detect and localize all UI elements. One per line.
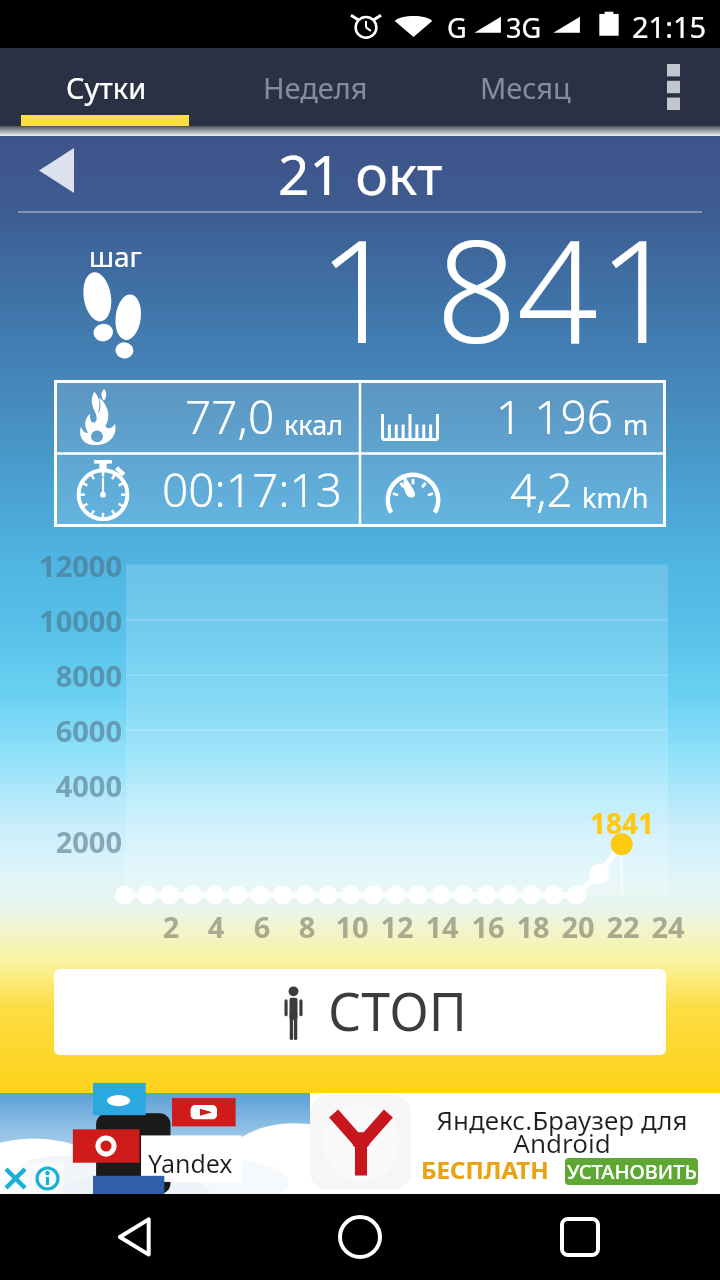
staticText: 1 841 (318, 191, 680, 384)
button[interactable]: More options (633, 48, 713, 126)
staticText: 6 (237, 907, 287, 946)
staticText: шаг (89, 237, 142, 275)
staticText: 18 (508, 907, 558, 946)
button[interactable]: 00:17:13 (54, 453, 360, 526)
staticText: 4000 (0, 766, 122, 805)
staticText: 4,2 (510, 458, 573, 521)
staticText: 20 (553, 907, 603, 946)
button[interactable]: Recent apps (520, 1194, 640, 1280)
staticText: 10 (327, 907, 377, 946)
staticText: 8 (282, 907, 332, 946)
staticText: 2 (146, 907, 196, 946)
button[interactable]: 1 196 (360, 380, 666, 453)
staticText: Месяц (480, 68, 571, 107)
staticText: СТОП (328, 975, 467, 1046)
staticText: 14 (417, 907, 467, 946)
staticText: ккал (284, 406, 343, 443)
button[interactable]: СТОП (54, 969, 666, 1055)
staticText: 00:17:13 (162, 458, 343, 521)
staticText: 8000 (0, 656, 122, 695)
staticText: 6000 (0, 711, 122, 750)
staticText: 10000 (0, 601, 122, 640)
staticText: Yandex (148, 1146, 233, 1180)
button[interactable]: Месяц (420, 48, 630, 126)
staticText: БЕСПЛАТНО (421, 1153, 561, 1219)
button[interactable]: 77,0 (54, 380, 360, 453)
staticText: 21:15 (632, 7, 707, 46)
staticText: G (447, 9, 467, 46)
staticText: 21 окт (278, 136, 443, 211)
staticText: m (623, 406, 649, 443)
button[interactable]: 4,2 (360, 453, 666, 526)
staticText: 12000 (0, 546, 122, 585)
staticText: Android (412, 1125, 712, 1160)
button[interactable]: Previous day (20, 140, 92, 200)
staticText: 3G (506, 9, 542, 46)
button[interactable]: УСТАНОВИТЬ (565, 1158, 698, 1185)
staticText: 1841 (582, 804, 662, 842)
button[interactable]: Close ad (0, 1163, 31, 1194)
staticText: 12 (372, 907, 422, 946)
staticText: 24 (643, 907, 693, 946)
staticText: 4 (191, 907, 241, 946)
button[interactable]: Неделя (210, 48, 420, 126)
staticText: 16 (463, 907, 513, 946)
staticText: Неделя (263, 68, 368, 107)
staticText: УСТАНОВИТЬ (567, 1158, 697, 1185)
staticText: 2000 (0, 822, 122, 861)
staticText: 1 196 (496, 385, 614, 448)
button[interactable]: Back (75, 1194, 195, 1280)
staticText: km/h (582, 479, 649, 516)
button[interactable]: Сутки (2, 48, 210, 126)
staticText: Сутки (66, 68, 147, 107)
staticText: Яндекс.Браузер для (412, 1102, 712, 1137)
button[interactable]: Ad information (32, 1163, 63, 1194)
staticText: 22 (598, 907, 648, 946)
staticText: 77,0 (185, 385, 275, 448)
button[interactable]: Home (300, 1194, 420, 1280)
